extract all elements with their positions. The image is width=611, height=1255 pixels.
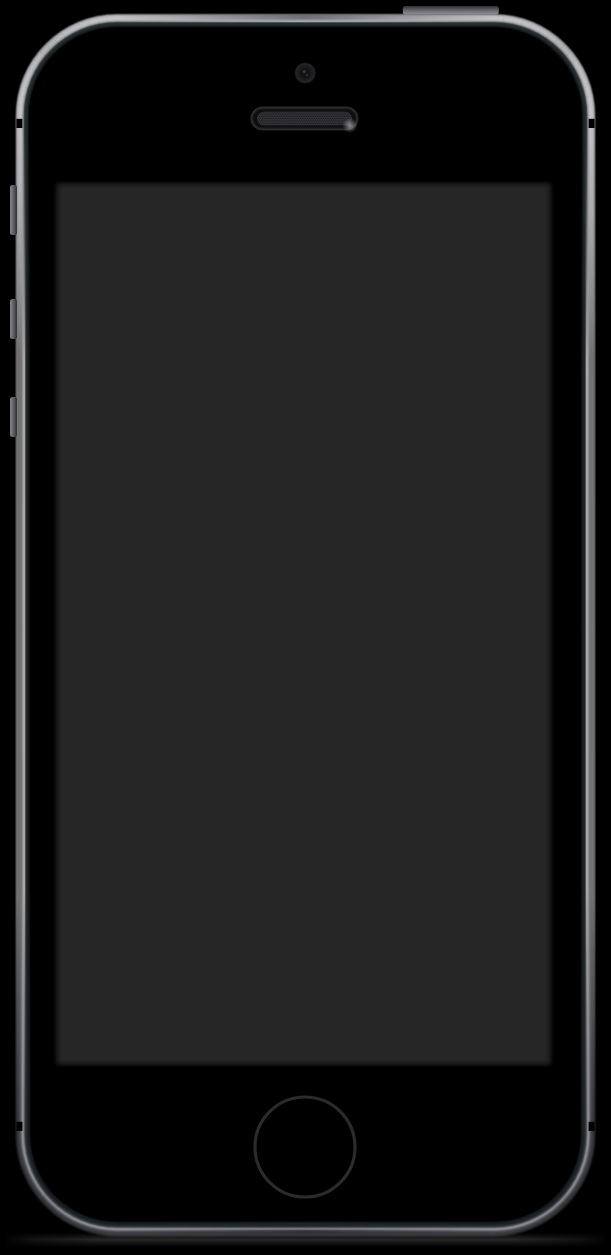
button[interactable]: Screen — [54, 181, 553, 1067]
button[interactable]: Volume down — [6, 397, 20, 437]
button[interactable]: Ring silent switch — [6, 185, 20, 235]
button[interactable]: Volume up — [6, 299, 20, 339]
button[interactable]: Power — [403, 2, 499, 16]
button[interactable]: Home — [253, 1095, 357, 1199]
